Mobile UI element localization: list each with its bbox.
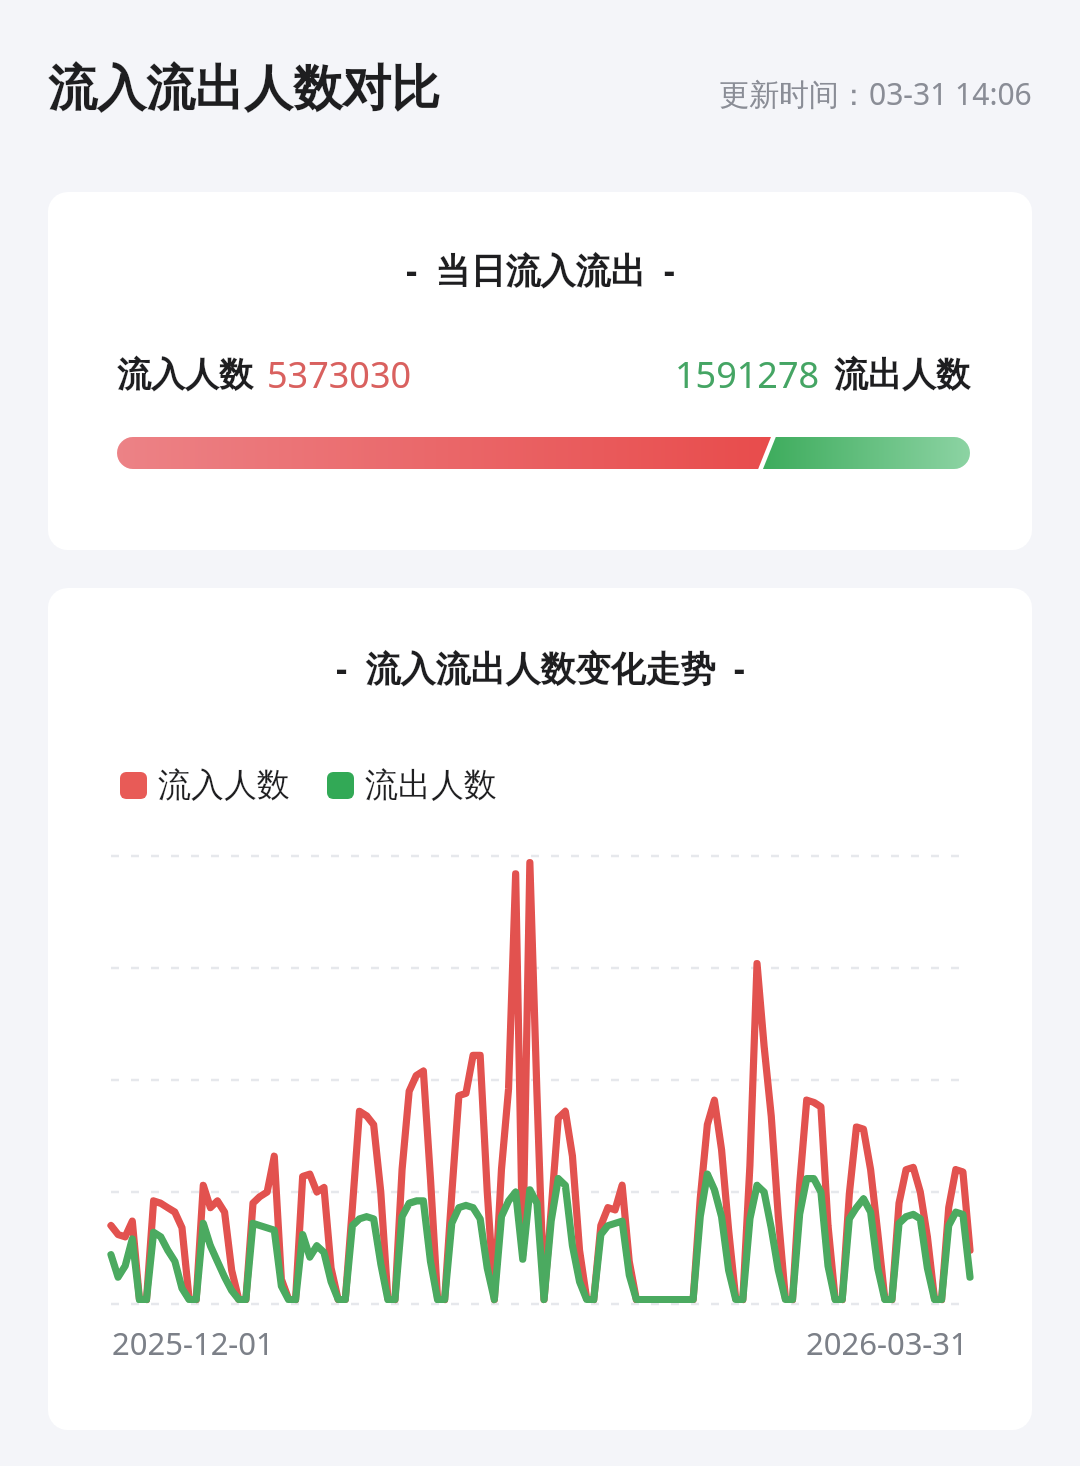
staticText: 2025-12-01 [112,1322,274,1364]
other: 当日流入流出占比 [117,437,970,469]
staticText: 更新时间：03-31 14:06 [719,73,1032,114]
staticText: 流出人数 [365,764,497,806]
staticText: 流入流出人数对比 [48,58,440,120]
staticText: - 当日流入流出 - [406,246,675,294]
staticText: 流入人数 [117,353,253,396]
other: 流入流出人数变化走势折线图 [111,856,970,1304]
staticText: 流出人数 [834,353,970,396]
staticText: 5373030 [267,350,412,399]
staticText: 流入人数 [158,764,290,806]
staticText: 1591278 [675,350,820,399]
button[interactable]: - 当日流入流出 - [48,192,1032,550]
button[interactable]: - 流入流出人数变化走势 - [48,588,1032,1430]
staticText: - 流入流出人数变化走势 - [336,644,745,692]
staticText: 2026-03-31 [806,1322,968,1364]
